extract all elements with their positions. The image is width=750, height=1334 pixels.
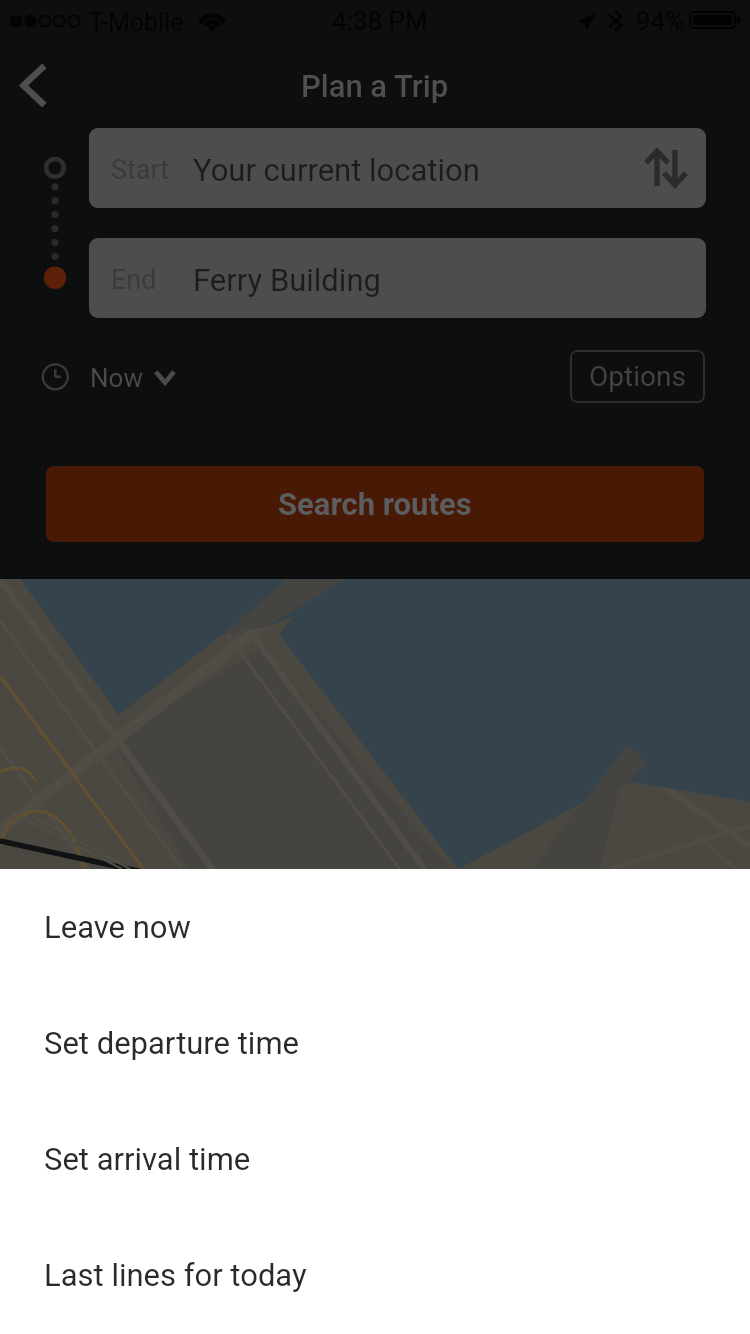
button[interactable]: Start (89, 128, 706, 208)
staticText: End (111, 264, 157, 296)
button[interactable]: Options (570, 350, 705, 403)
staticText: Set arrival time (44, 1141, 251, 1177)
staticText: Now (90, 363, 143, 393)
staticText: Your current location (193, 152, 480, 188)
staticText: Start (111, 154, 170, 186)
staticText: Search routes (278, 486, 472, 522)
staticText: T-Mobile (89, 8, 184, 37)
staticText: Last lines for today (44, 1257, 307, 1293)
button[interactable]: Swap start and end (638, 141, 692, 195)
button[interactable]: Departure time: Now (30, 350, 180, 406)
staticText: 4:38 PM (332, 6, 428, 36)
staticText: Leave now (44, 909, 191, 945)
button[interactable]: Leave now (0, 869, 750, 985)
staticText: Ferry Building (193, 262, 381, 298)
button[interactable]: End (89, 238, 706, 318)
button[interactable]: Last lines for today (0, 1217, 750, 1333)
button[interactable]: Search routes (46, 466, 704, 542)
button[interactable]: Set departure time (0, 985, 750, 1101)
staticText: 94% (636, 6, 685, 36)
staticText: Options (589, 360, 686, 393)
button[interactable]: Set arrival time (0, 1101, 750, 1217)
staticText: Plan a Trip (301, 68, 449, 104)
button[interactable]: Back (0, 50, 72, 122)
staticText: Set departure time (44, 1025, 300, 1061)
